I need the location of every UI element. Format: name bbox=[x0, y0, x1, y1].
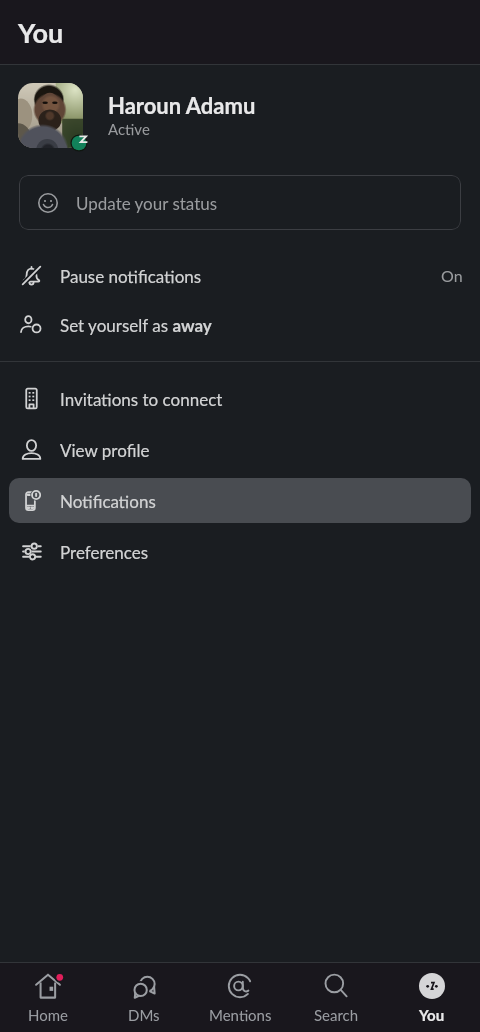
staticText: Home bbox=[28, 1006, 68, 1024]
button[interactable]: Invitations to connect bbox=[9, 376, 471, 421]
button[interactable]: Home bbox=[0, 963, 96, 1032]
staticText: On bbox=[441, 266, 463, 285]
button[interactable]: You bbox=[384, 963, 480, 1032]
button[interactable]: Update your status bbox=[19, 175, 461, 230]
staticText: Pause notifications bbox=[60, 266, 202, 286]
staticText: Active bbox=[108, 120, 150, 138]
staticText: Set yourself as away bbox=[60, 315, 212, 335]
staticText: Update your status bbox=[76, 193, 218, 213]
button[interactable]: Preferences bbox=[9, 529, 471, 574]
button[interactable]: Haroun Adamu bbox=[0, 65, 480, 165]
staticText: Notifications bbox=[60, 491, 156, 511]
button[interactable]: DMs bbox=[96, 963, 192, 1032]
staticText: You bbox=[18, 16, 64, 48]
button[interactable]: Notifications bbox=[9, 478, 471, 523]
button[interactable]: Mentions bbox=[192, 963, 288, 1032]
staticText: DMs bbox=[128, 1006, 160, 1024]
staticText: Search bbox=[314, 1006, 359, 1024]
button[interactable]: Set yourself as away bbox=[9, 303, 471, 346]
button[interactable]: View profile bbox=[9, 427, 471, 472]
staticText: Invitations to connect bbox=[60, 389, 223, 409]
staticText: Mentions bbox=[209, 1006, 272, 1024]
staticText: Haroun Adamu bbox=[108, 92, 256, 118]
button[interactable]: Pause notifications bbox=[9, 254, 471, 297]
staticText: View profile bbox=[60, 440, 150, 460]
staticText: You bbox=[419, 1006, 445, 1024]
staticText: Preferences bbox=[60, 542, 149, 562]
button[interactable]: Search bbox=[288, 963, 384, 1032]
